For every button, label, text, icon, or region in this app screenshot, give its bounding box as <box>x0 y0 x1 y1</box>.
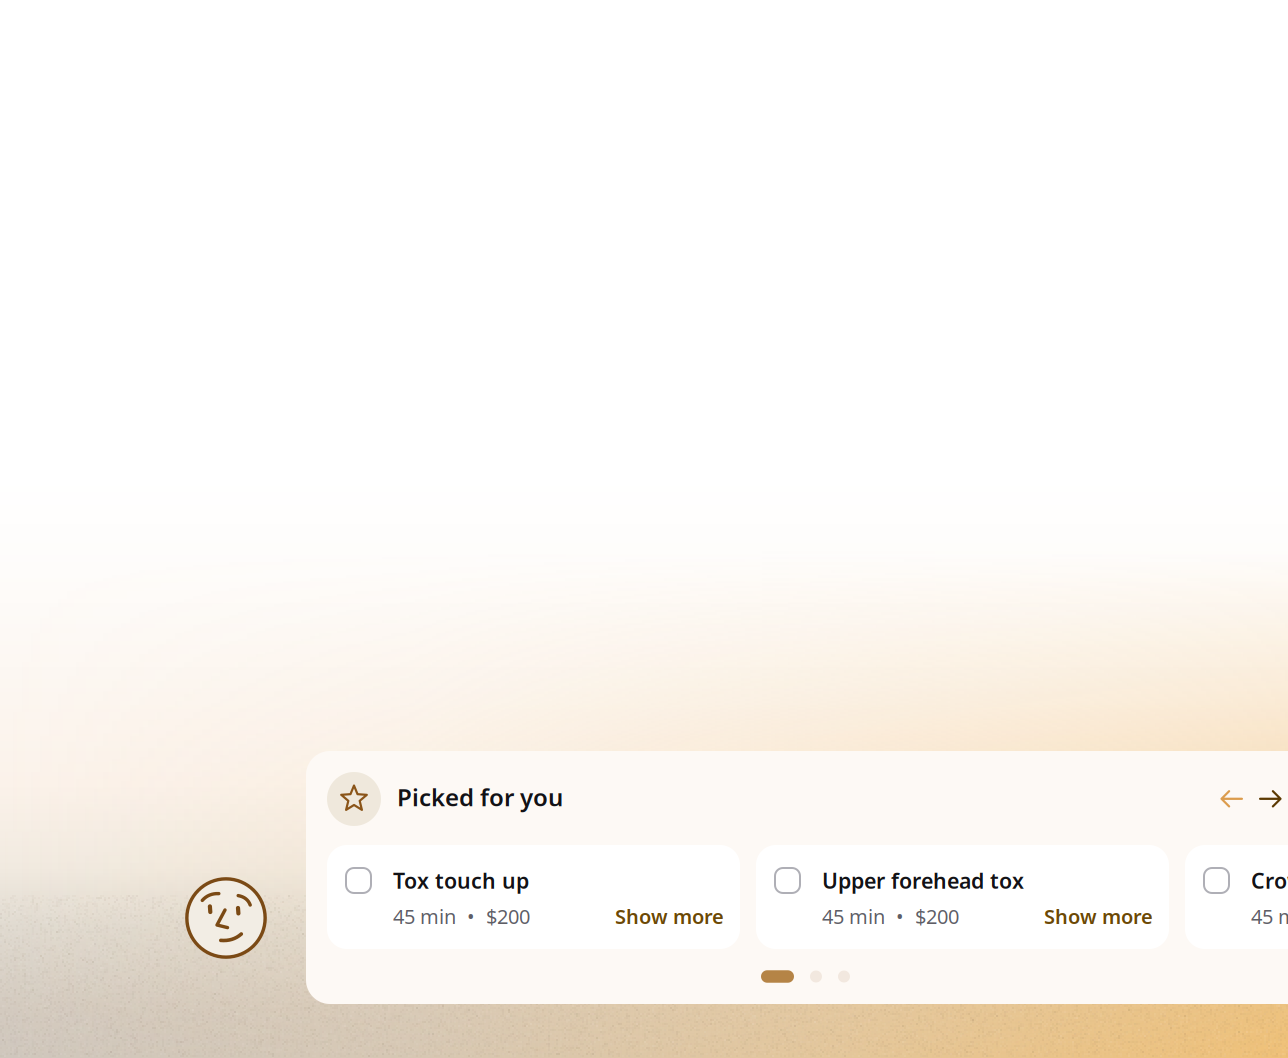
staticText: $200 <box>915 903 959 930</box>
staticText: Tox touch up <box>393 866 529 895</box>
button[interactable]: Crow's feet tox <box>1185 845 1288 949</box>
staticText: Show more <box>1044 903 1153 930</box>
staticText: 45 min <box>1251 903 1288 930</box>
staticText: • <box>896 903 904 930</box>
staticText: 45 min <box>393 903 456 930</box>
staticText: Picked for you <box>397 781 563 813</box>
staticText: Show more <box>615 903 724 930</box>
staticText: • <box>467 903 475 930</box>
staticText: 45 min <box>822 903 885 930</box>
button[interactable]: Next <box>1259 788 1281 810</box>
button[interactable]: Tox touch up <box>327 845 740 949</box>
button[interactable]: Previous <box>1220 788 1242 810</box>
staticText: Crow's feet tox <box>1251 866 1288 895</box>
button[interactable]: Upper forehead tox <box>756 845 1169 949</box>
staticText: $200 <box>486 903 530 930</box>
staticText: Upper forehead tox <box>822 866 1024 895</box>
